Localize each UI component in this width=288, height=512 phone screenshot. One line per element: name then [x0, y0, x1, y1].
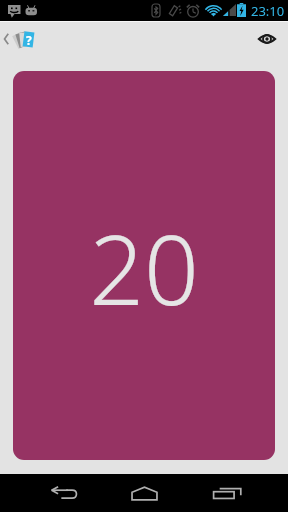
button[interactable]: Reveal answer [246, 21, 288, 57]
staticText: 20 [89, 202, 199, 333]
staticText: ? [26, 32, 32, 48]
button[interactable]: Navigate up [0, 21, 40, 57]
button[interactable]: Recent apps [200, 474, 255, 512]
button[interactable]: Back [36, 474, 91, 512]
button[interactable]: Home [117, 474, 172, 512]
staticText: 23:10 [251, 2, 285, 20]
button[interactable]: 20 [13, 71, 275, 460]
